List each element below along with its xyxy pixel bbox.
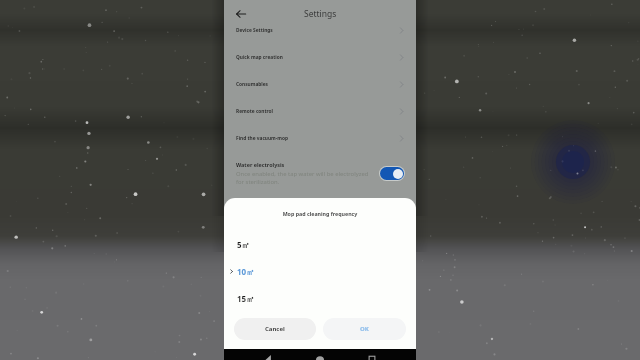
button[interactable]: OK	[323, 318, 406, 340]
staticText: 5㎡	[237, 239, 250, 250]
staticText: Mop pad cleaning frequency	[224, 210, 416, 217]
staticText: 15㎡	[237, 293, 255, 304]
button[interactable]: Consumables	[224, 71, 416, 98]
staticText: 10㎡	[237, 266, 255, 277]
button[interactable]: Back	[234, 7, 247, 20]
button[interactable]: Find the vacuum-mop	[224, 125, 416, 152]
button[interactable]: 5㎡	[224, 231, 416, 258]
staticText: Settings	[304, 8, 337, 20]
button[interactable]: 10㎡	[224, 258, 416, 285]
staticText: Water electrolysis	[236, 161, 285, 168]
button[interactable]: 15㎡	[224, 285, 416, 312]
button[interactable]: Home	[314, 355, 326, 360]
staticText: Consumables	[236, 81, 269, 88]
staticText: Find the vacuum-mop	[236, 135, 289, 142]
staticText: Cancel	[265, 325, 285, 333]
button[interactable]: Cancel	[234, 318, 316, 340]
staticText: Device Settings	[236, 27, 273, 34]
button[interactable]: Remote control	[224, 98, 416, 125]
button[interactable]: Device Settings	[224, 17, 416, 44]
staticText: Once enabled, the tap water will be elec…	[236, 170, 369, 186]
staticText: OK	[360, 325, 369, 333]
button[interactable]: Recents	[366, 355, 378, 360]
button[interactable]: Back	[262, 355, 274, 360]
button[interactable]: Water electrolysis	[224, 152, 416, 190]
button[interactable]: Water electrolysis toggle	[380, 167, 404, 180]
button[interactable]: Quick map creation	[224, 44, 416, 71]
staticText: Quick map creation	[236, 54, 283, 61]
staticText: Remote control	[236, 108, 274, 115]
